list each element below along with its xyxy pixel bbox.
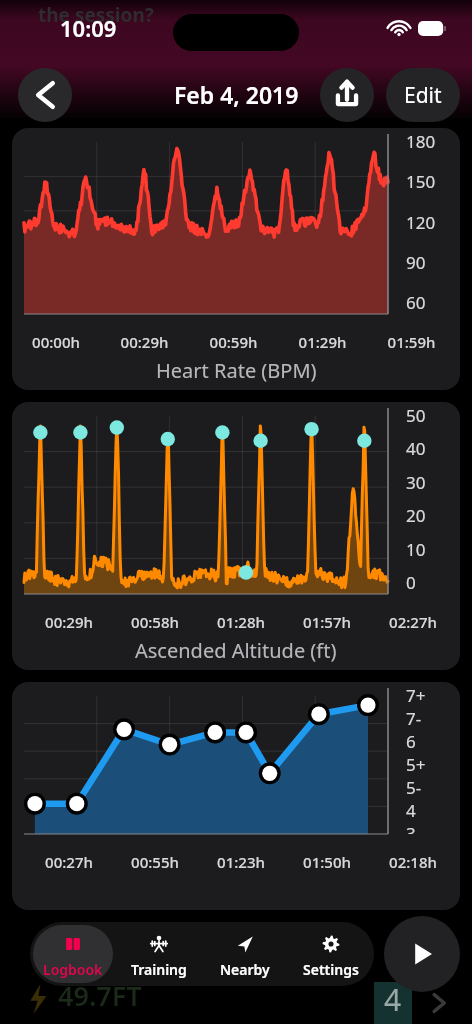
staticText: 7+ <box>406 684 426 707</box>
staticText: Ascended Altitude (ft) <box>135 637 337 664</box>
staticText: 180 <box>406 130 436 153</box>
staticText: 02:18h <box>370 852 456 872</box>
staticText: 30 <box>406 471 426 494</box>
staticText: 0 <box>406 571 416 594</box>
staticText: Settings <box>303 960 359 979</box>
button[interactable]: Share <box>320 68 374 122</box>
staticText: 01:59h <box>367 332 456 352</box>
staticText: 00:59h <box>189 332 278 352</box>
staticText: 00:55h <box>112 852 198 872</box>
button[interactable]: Nearby <box>205 925 285 983</box>
staticText: 5+ <box>406 753 426 776</box>
staticText: 4 <box>406 799 416 822</box>
staticText: 00:27h <box>26 852 112 872</box>
staticText: 50 <box>406 404 426 427</box>
staticText: 01:50h <box>284 852 370 872</box>
button[interactable]: Edit <box>386 68 460 122</box>
staticText: 90 <box>406 251 426 274</box>
staticText: 150 <box>406 170 436 193</box>
button[interactable]: 7+ <box>12 682 460 910</box>
staticText: 02:27h <box>370 612 456 632</box>
staticText: 00:29h <box>26 612 112 632</box>
staticText: Feb 4, 2019 <box>174 79 299 110</box>
button[interactable]: Training <box>119 925 199 983</box>
staticText: 40 <box>406 437 426 460</box>
staticText: 3 <box>406 822 416 834</box>
staticText: 5- <box>406 776 422 799</box>
staticText: 20 <box>406 504 426 527</box>
staticText: 01:23h <box>198 852 284 872</box>
staticText: 7- <box>406 707 422 730</box>
staticText: Route Difficulty (UIAA) <box>132 925 340 952</box>
staticText: 10:09 <box>60 13 117 43</box>
staticText: 01:28h <box>198 612 284 632</box>
button[interactable]: 180 <box>12 128 460 390</box>
staticText: 60 <box>406 291 426 314</box>
staticText: Edit <box>404 81 442 110</box>
staticText: 10 <box>406 538 426 561</box>
button[interactable]: 50 <box>12 402 460 670</box>
staticText: 4 <box>384 979 402 1020</box>
staticText: 01:57h <box>284 612 370 632</box>
staticText: Training <box>131 960 187 979</box>
button[interactable]: Back <box>18 68 72 122</box>
staticText: 01:29h <box>278 332 367 352</box>
staticText: Logbook <box>43 960 103 979</box>
button[interactable]: Settings <box>291 925 371 983</box>
button[interactable]: Logbook <box>33 925 113 983</box>
staticText: 49.7FT <box>58 977 142 1014</box>
button[interactable]: Start <box>384 916 460 992</box>
staticText: 00:00h <box>12 332 100 352</box>
staticText: 120 <box>406 211 436 234</box>
staticText: 6 <box>406 730 416 753</box>
staticText: 00:29h <box>100 332 189 352</box>
staticText: the session? <box>38 2 154 28</box>
staticText: Heart Rate (BPM) <box>156 357 317 384</box>
staticText: 00:58h <box>112 612 198 632</box>
staticText: Nearby <box>220 960 270 979</box>
